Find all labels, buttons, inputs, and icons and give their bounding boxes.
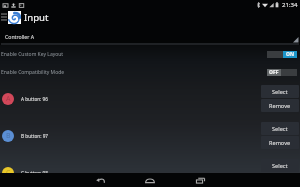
- staticText: Enable Compatibility Mode: [1, 69, 65, 76]
- staticText: A button: 96: [21, 96, 48, 102]
- button[interactable]: Select: [261, 122, 299, 135]
- staticText: Controller A: [5, 33, 35, 40]
- staticText: Input: [24, 11, 49, 24]
- staticText: Select: [272, 162, 288, 170]
- button[interactable]: Home: [125, 173, 175, 187]
- button[interactable]: Remove: [261, 136, 299, 149]
- staticText: ON: [286, 51, 295, 58]
- button[interactable]: Recent apps: [175, 173, 225, 187]
- button[interactable]: Enable Compatibility Mode: [0, 63, 300, 81]
- staticText: Select: [272, 125, 288, 133]
- button[interactable]: Controller A: [0, 23, 300, 45]
- staticText: A: [6, 94, 11, 104]
- staticText: Remove: [269, 102, 291, 110]
- staticText: B: [6, 131, 11, 141]
- staticText: 21:34: [282, 1, 298, 9]
- staticText: B button: 97: [21, 133, 49, 139]
- staticText: C: [6, 168, 11, 178]
- staticText: Enable Custom Key Layout: [1, 51, 64, 58]
- button[interactable]: Remove: [261, 99, 299, 112]
- button[interactable]: Select: [261, 159, 299, 172]
- button[interactable]: Select: [261, 85, 299, 98]
- staticText: Remove: [269, 139, 291, 147]
- button[interactable]: Enable Custom Key Layout: [0, 45, 300, 63]
- button[interactable]: Open navigation drawer: [0, 9, 8, 25]
- staticText: C button: 98: [21, 170, 48, 176]
- button[interactable]: Back: [75, 173, 125, 187]
- staticText: OFF: [269, 69, 279, 76]
- staticText: Select: [272, 88, 288, 96]
